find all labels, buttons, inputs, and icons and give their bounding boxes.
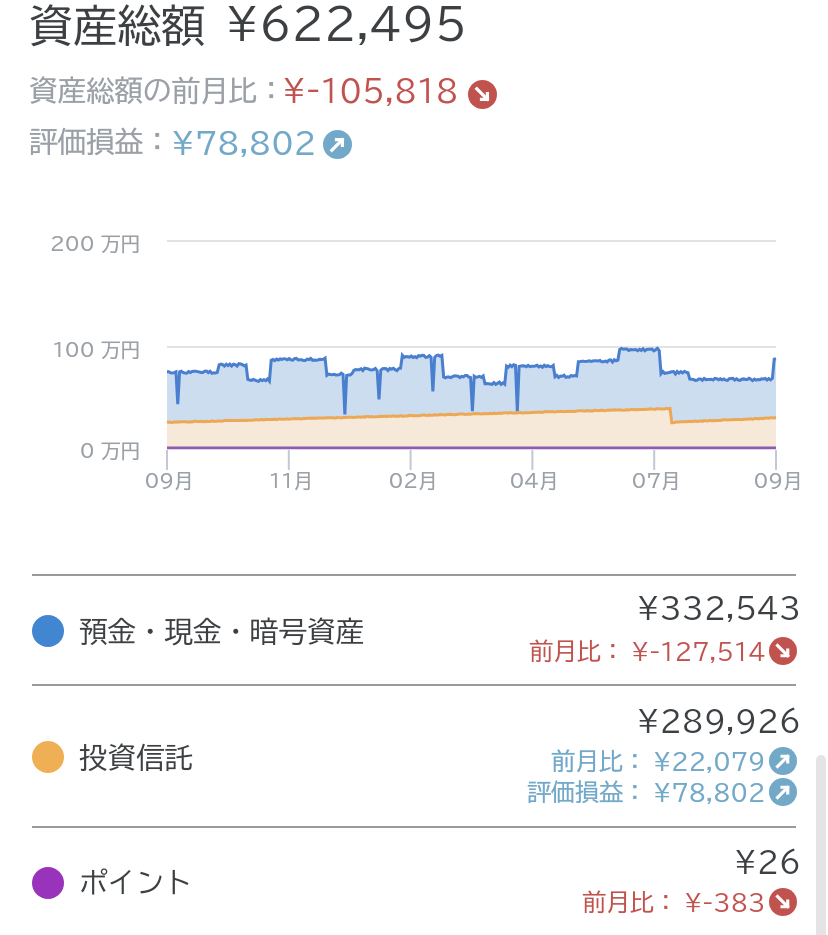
button[interactable]: Increase [769,747,797,775]
staticText: 200 万円 [2,234,140,254]
button[interactable]: ポイント [0,826,828,935]
button[interactable]: Increase [323,130,352,159]
button[interactable]: 預金・現金・暗号資産 [0,574,828,684]
staticText: 資産総額の前月比： [29,76,286,105]
staticText: 100 万円 [2,340,140,360]
staticText: 09月 [738,471,818,491]
button[interactable]: Decrease [769,637,797,665]
staticText: 預金・現金・暗号資産 [79,617,364,646]
staticText: ¥22,079 [653,750,766,773]
staticText: ¥332,543 [2,593,801,622]
staticText: ¥-105,818 [282,76,459,106]
staticText: 04月 [494,471,574,491]
staticText: ¥78,802 [171,128,317,158]
staticText: ¥-383 [684,891,766,914]
staticText: ¥-127,514 [631,640,766,663]
staticText: 0 万円 [2,441,140,461]
staticText: ¥622,495 [225,2,467,45]
staticText: 09月 [129,471,209,491]
staticText: 評価損益： [527,780,647,804]
staticText: 投資信託 [79,743,193,772]
staticText: 02月 [373,471,453,491]
button[interactable]: Increase [769,778,797,806]
staticText: 前月比： [529,639,625,663]
staticText: ¥26 [2,847,801,876]
staticText: ポイント [79,868,193,897]
staticText: 評価損益： [29,127,172,156]
button[interactable]: 投資信託 [0,684,828,826]
button[interactable]: Decrease [468,80,497,109]
staticText: ¥78,802 [653,781,766,804]
staticText: 前月比： [582,890,678,914]
staticText: 11月 [251,471,331,491]
staticText: ¥289,926 [2,706,801,735]
staticText: 07月 [616,471,696,491]
staticText: 資産総額 [29,3,205,47]
staticText: 前月比： [551,749,647,773]
button[interactable]: Decrease [769,888,797,916]
